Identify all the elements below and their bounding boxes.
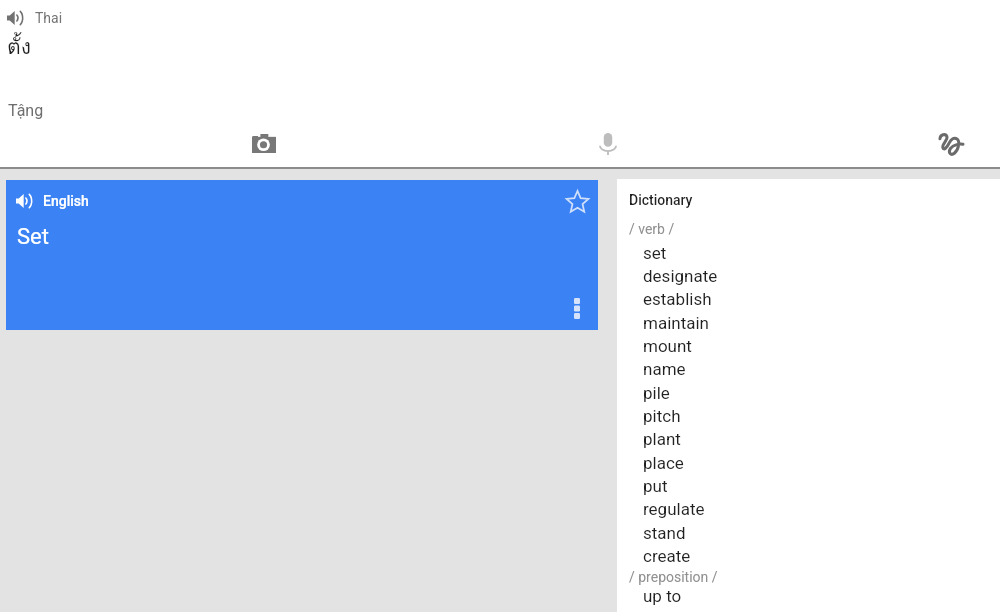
staticText: maintain (643, 313, 710, 333)
staticText: set (643, 243, 667, 263)
staticText: stand (643, 523, 686, 543)
staticText: / verb / (629, 221, 675, 237)
button[interactable]: Camera input (240, 119, 288, 167)
button[interactable]: up to (637, 584, 837, 607)
button[interactable]: Thai (7, 10, 63, 26)
button[interactable]: mount (637, 334, 837, 357)
button[interactable]: stand (637, 521, 837, 544)
button[interactable]: create (637, 544, 837, 567)
staticText: English (43, 193, 89, 209)
staticText: pitch (643, 406, 681, 426)
staticText: Dictionary (629, 192, 693, 208)
staticText: mount (643, 336, 692, 356)
staticText: regulate (643, 499, 705, 519)
button[interactable]: designate (637, 264, 837, 287)
button[interactable]: More options (553, 284, 601, 332)
button[interactable]: Save translation (558, 182, 596, 220)
staticText: pile (643, 383, 670, 403)
staticText: place (643, 453, 684, 473)
button[interactable]: name (637, 357, 837, 380)
button[interactable]: establish (637, 287, 837, 310)
button[interactable]: regulate (637, 497, 837, 520)
staticText: designate (643, 266, 718, 286)
button[interactable]: Handwriting input (927, 120, 975, 168)
staticText: / preposition / (629, 569, 718, 585)
staticText: ตั้ง (7, 30, 31, 63)
staticText: Thai (35, 10, 63, 26)
staticText: Tậng (8, 101, 44, 120)
staticText: put (643, 476, 668, 496)
button[interactable]: Voice input (584, 120, 632, 168)
button[interactable]: pitch (637, 404, 837, 427)
staticText: up to (643, 586, 682, 606)
staticText: establish (643, 289, 712, 309)
staticText: plant (643, 429, 681, 449)
staticText: Set (17, 224, 49, 250)
button[interactable]: / verb / (623, 217, 823, 240)
button[interactable]: maintain (637, 311, 837, 334)
button[interactable]: put (637, 474, 837, 497)
button[interactable]: English (6, 180, 598, 330)
button[interactable]: plant (637, 427, 837, 450)
button[interactable]: set (637, 241, 837, 264)
staticText: name (643, 359, 686, 379)
button[interactable]: / preposition / (623, 565, 823, 588)
button[interactable]: pile (637, 381, 837, 404)
button[interactable]: place (637, 451, 837, 474)
staticText: create (643, 546, 691, 566)
